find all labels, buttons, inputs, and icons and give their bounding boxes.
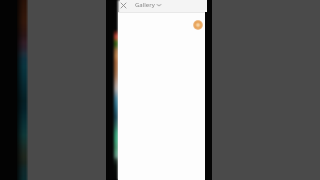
button[interactable]: Add [193,20,203,30]
staticText: Gallery [135,1,155,9]
button[interactable]: Gallery [135,1,161,9]
button[interactable]: Close [118,0,128,10]
